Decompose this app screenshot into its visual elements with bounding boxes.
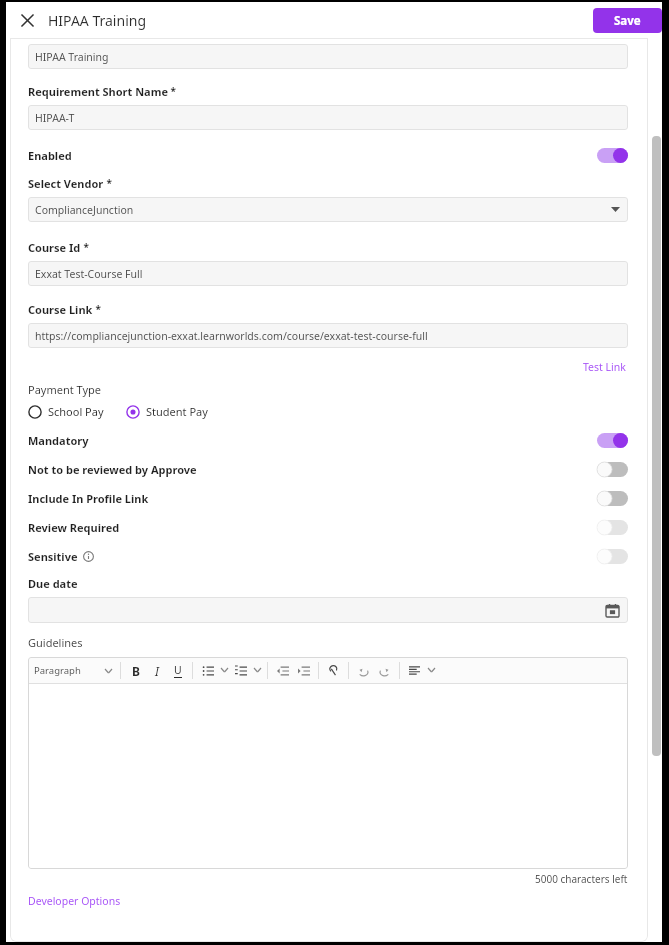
staticText: * xyxy=(93,302,102,316)
staticText: * xyxy=(168,84,177,98)
button[interactable]: https://compliancejunction-exxat.learnwo… xyxy=(28,323,628,348)
button[interactable]: Student Pay xyxy=(126,404,208,419)
button[interactable]: Bullet style xyxy=(218,660,230,680)
button[interactable]: Align xyxy=(404,660,425,681)
button[interactable]: School Pay xyxy=(28,404,104,419)
button[interactable]: ComplianceJunction xyxy=(28,197,628,222)
staticText: Paragraph xyxy=(34,664,81,677)
button[interactable]: Review Required xyxy=(28,513,628,542)
button[interactable]: HIPAA Training xyxy=(28,44,628,69)
staticText: Requirement Short Name xyxy=(28,84,168,99)
staticText: HIPAA Training xyxy=(35,50,109,64)
staticText: * xyxy=(81,240,90,254)
staticText: B xyxy=(132,663,140,679)
button[interactable]: Numbered list xyxy=(230,660,251,681)
button[interactable]: Bold xyxy=(125,660,146,681)
button[interactable]: Pick due date xyxy=(28,597,628,623)
button[interactable]: Close xyxy=(14,7,40,33)
button[interactable]: Test Link xyxy=(581,358,628,376)
staticText: Mandatory xyxy=(28,433,89,448)
staticText: * xyxy=(104,176,113,190)
button[interactable]: Include In Profile Link xyxy=(28,484,628,513)
button[interactable]: Save xyxy=(593,8,662,33)
staticText: Review Required xyxy=(28,520,120,535)
staticText: I xyxy=(155,663,159,679)
button[interactable]: Underline xyxy=(167,660,188,681)
staticText: https://compliancejunction-exxat.learnwo… xyxy=(35,329,428,343)
button[interactable]: Italic xyxy=(146,660,167,681)
staticText: 5000 characters left xyxy=(535,872,628,886)
button[interactable]: Redo xyxy=(374,660,395,681)
staticText: Course Link xyxy=(28,302,93,317)
staticText: School Pay xyxy=(48,404,104,419)
button[interactable]: Bulleted list xyxy=(197,660,218,681)
button[interactable]: Not to be reviewed by Approve xyxy=(28,455,628,484)
staticText: Sensitive xyxy=(28,549,78,564)
button[interactable]: Mandatory xyxy=(28,426,628,455)
staticText: HIPAA-T xyxy=(35,111,75,125)
staticText: Exxat Test-Course Full xyxy=(35,267,143,281)
button[interactable]: Exxat Test-Course Full xyxy=(28,261,628,286)
staticText: Due date xyxy=(28,576,78,591)
button[interactable] xyxy=(28,684,628,869)
button[interactable]: Sensitive xyxy=(28,542,628,571)
staticText: Select Vendor xyxy=(28,176,104,191)
staticText: Not to be reviewed by Approve xyxy=(28,462,197,477)
button[interactable]: Developer Options xyxy=(28,894,121,908)
staticText: Include In Profile Link xyxy=(28,491,149,506)
button[interactable]: Undo xyxy=(353,660,374,681)
staticText: Student Pay xyxy=(146,404,208,419)
staticText: Course Id xyxy=(28,240,81,255)
button[interactable]: Enabled xyxy=(28,141,628,170)
staticText: Enabled xyxy=(28,148,72,163)
staticText: Guidelines xyxy=(28,635,83,650)
button[interactable]: Indent xyxy=(293,660,314,681)
button[interactable]: Paragraph xyxy=(34,664,112,677)
staticText: Developer Options xyxy=(28,894,121,908)
button[interactable]: Insert link xyxy=(323,660,344,681)
staticText: U xyxy=(174,663,182,677)
button[interactable]: Number style xyxy=(251,660,263,680)
staticText: HIPAA Training xyxy=(48,11,146,30)
button[interactable]: Outdent xyxy=(272,660,293,681)
staticText: Payment Type xyxy=(28,382,102,397)
button[interactable]: Align options xyxy=(425,660,437,680)
button[interactable]: HIPAA-T xyxy=(28,105,628,130)
staticText: ComplianceJunction xyxy=(35,203,134,217)
staticText: Save xyxy=(614,13,641,29)
staticText: Test Link xyxy=(583,360,626,374)
